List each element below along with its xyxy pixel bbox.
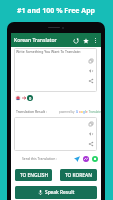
staticText: Write Something You Want To Translate: [16, 49, 81, 54]
staticText: powered by [59, 110, 76, 114]
staticText: TO ENGLISH [20, 172, 48, 179]
staticText: l [85, 110, 86, 114]
staticText: 0 [29, 96, 32, 101]
button[interactable]: Share [88, 78, 94, 84]
staticText: Speak Result [45, 189, 75, 196]
button[interactable]: TO ENGLISH [15, 169, 52, 181]
button[interactable]: Send on Telegram [73, 155, 80, 162]
button[interactable]: Copy [88, 121, 94, 127]
staticText: TO KOREAN [65, 172, 92, 179]
button[interactable]: Send on WhatsApp [91, 155, 98, 162]
button[interactable]: Target language [27, 95, 33, 101]
staticText: Translate [88, 110, 101, 114]
staticText: Send this Translation : [22, 156, 58, 161]
button[interactable]: Listen [88, 68, 94, 74]
staticText: e [86, 110, 88, 114]
button[interactable]: TO KOREAN [60, 169, 97, 181]
button[interactable]: Copy [88, 58, 94, 64]
staticText: o [81, 110, 83, 114]
button[interactable]: Rate us [81, 36, 90, 45]
staticText: #1 and 100 % Free App [17, 6, 96, 16]
staticText: g [83, 110, 85, 114]
button[interactable]: Listen [88, 131, 94, 137]
button[interactable]: Send on Messenger [82, 155, 89, 162]
button[interactable]: Source language [15, 95, 21, 101]
button[interactable]: More options [91, 36, 100, 45]
button[interactable]: Share [88, 141, 94, 147]
staticText: Korean Translator [14, 37, 57, 44]
button[interactable]: Translation result [14, 117, 97, 151]
button[interactable]: Refresh [71, 36, 80, 45]
button[interactable]: Speak Result [15, 186, 97, 199]
button[interactable]: Text to translate [14, 48, 97, 92]
staticText: o [79, 110, 81, 114]
staticText: Translation Result : [16, 109, 47, 114]
staticText: G [76, 110, 79, 114]
